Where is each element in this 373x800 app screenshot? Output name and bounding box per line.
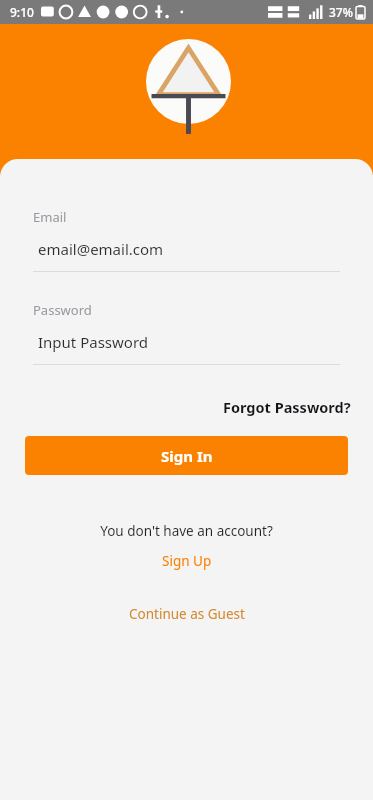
staticText: Email — [33, 208, 67, 226]
staticText: Sign In — [161, 446, 213, 466]
staticText: You don't have an account? — [100, 522, 273, 540]
staticText: email@email.com — [38, 239, 164, 259]
staticText: Sign Up — [162, 552, 212, 570]
button[interactable]: Sign In — [25, 436, 348, 475]
staticText: Forgot Password? — [223, 397, 351, 417]
staticText: 37% — [329, 4, 353, 20]
staticText: Password — [33, 301, 92, 319]
button[interactable]: Forgot Password? — [201, 391, 373, 423]
button[interactable]: email@email.com — [0, 239, 373, 259]
staticText: Continue as Guest — [129, 605, 245, 623]
button[interactable]: Continue as Guest — [113, 602, 261, 626]
button[interactable]: Sign Up — [146, 549, 228, 573]
button[interactable]: Input Password — [0, 332, 373, 352]
staticText: Input Password — [38, 332, 149, 352]
staticText: 9:10 — [10, 4, 34, 20]
